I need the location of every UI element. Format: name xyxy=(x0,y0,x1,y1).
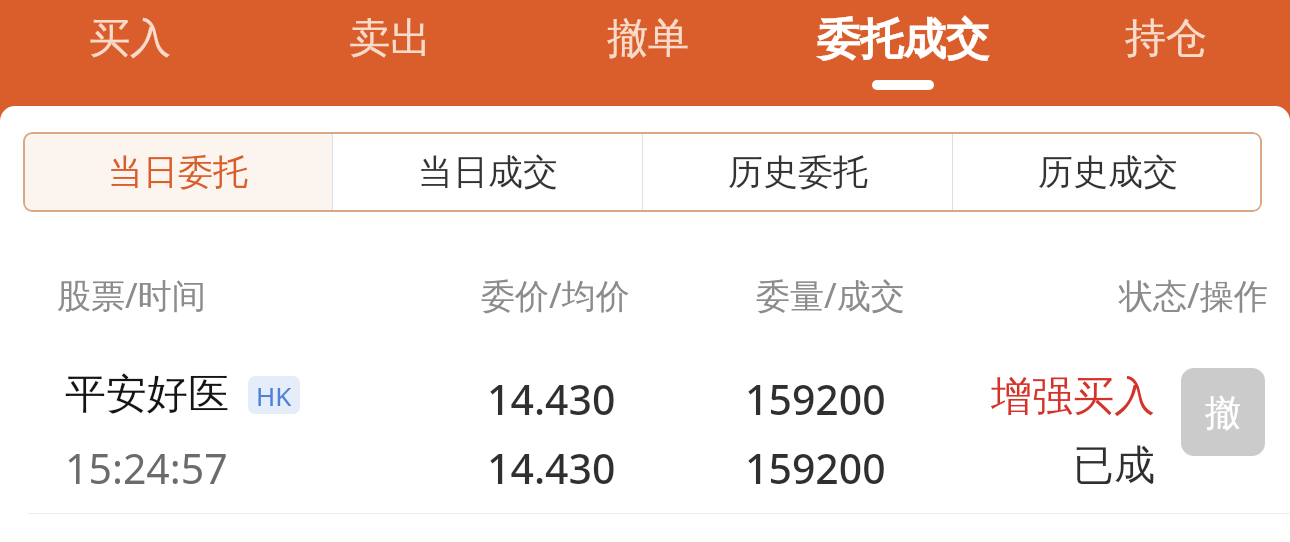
staticText: 历史委托 xyxy=(728,150,868,194)
staticText: 撤 xyxy=(1205,390,1241,435)
staticText: 历史成交 xyxy=(1038,150,1178,194)
button[interactable]: 历史委托 xyxy=(643,132,952,212)
staticText: 状态/操作 xyxy=(1119,272,1268,318)
button[interactable]: 卖出 xyxy=(287,0,492,106)
staticText: 当日委托 xyxy=(108,150,248,194)
staticText: 15:24:57 xyxy=(65,440,228,496)
staticText: 买入 xyxy=(89,13,171,65)
staticText: 平安好医 xyxy=(65,369,229,421)
staticText: 委量/成交 xyxy=(756,272,905,318)
button[interactable]: 历史成交 xyxy=(953,132,1262,212)
staticText: 已成 xyxy=(1073,440,1155,492)
staticText: 股票/时间 xyxy=(57,272,206,318)
staticText: 14.430 xyxy=(487,371,616,427)
button[interactable]: 委托成交 xyxy=(788,0,1018,106)
staticText: 持仓 xyxy=(1125,13,1207,65)
staticText: 14.430 xyxy=(487,440,616,496)
button[interactable]: 撤单 xyxy=(1181,368,1265,456)
button[interactable]: 当日成交 xyxy=(333,132,642,212)
staticText: 增强买入 xyxy=(991,371,1155,423)
staticText: 当日成交 xyxy=(418,150,558,194)
staticText: 委价/均价 xyxy=(481,272,630,318)
staticText: 委托成交 xyxy=(817,13,989,67)
button[interactable]: 买入 xyxy=(27,0,233,106)
staticText: 159200 xyxy=(745,371,886,427)
button[interactable]: 撤单 xyxy=(545,0,750,106)
staticText: 卖出 xyxy=(349,13,431,65)
button[interactable]: 当日委托 xyxy=(23,132,332,212)
staticText: 159200 xyxy=(745,440,886,496)
button[interactable]: 持仓 xyxy=(1063,0,1268,106)
staticText: 撤单 xyxy=(607,13,689,65)
staticText: HK xyxy=(256,378,292,413)
